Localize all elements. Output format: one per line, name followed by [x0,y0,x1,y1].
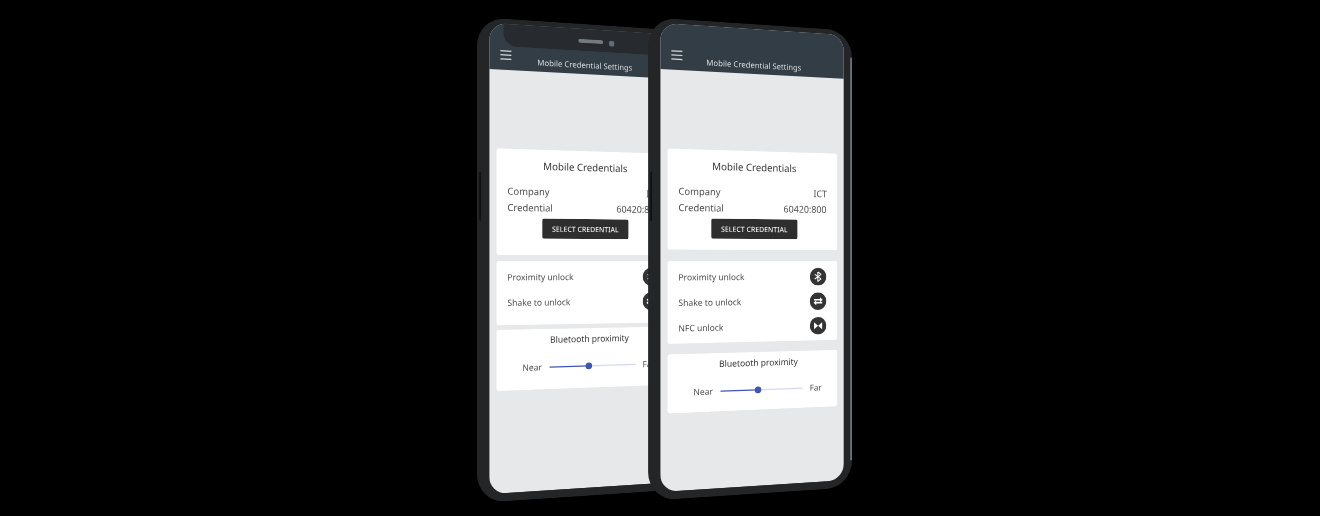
staticText: ICT [813,187,827,200]
staticText: Near [693,385,713,398]
staticText: Near [522,361,542,374]
staticText: Proximity unlock [507,271,574,283]
button[interactable]: Proximity unlock [507,264,659,290]
staticText: Far [810,382,822,394]
staticText: SELECT CREDENTIAL [552,224,619,234]
staticText: Bluetooth proximity [719,356,798,370]
button[interactable]: Shake to unlock [507,288,659,315]
staticText: Mobile Credential Settings [706,56,801,73]
button[interactable]: NFC unlock [678,313,826,341]
staticText: NFC unlock [678,321,724,335]
staticText: Company [678,184,721,198]
staticText: ICT [646,187,660,200]
button[interactable]: Open navigation menu [495,44,515,65]
staticText: Mobile Credential Settings [537,56,632,73]
button[interactable]: Proximity slider [721,383,802,396]
button[interactable]: Proximity unlock [678,264,826,290]
staticText: Credential [678,201,724,215]
staticText: SELECT CREDENTIAL [721,224,788,234]
staticText: 60420:800 [783,202,827,216]
staticText: Shake to unlock [678,296,741,309]
button[interactable]: SELECT CREDENTIAL [542,218,629,239]
staticText: Shake to unlock [507,296,570,309]
staticText: 60420:800 [616,202,660,216]
button[interactable]: Proximity slider [550,359,635,372]
staticText: Mobile Credentials [712,159,797,175]
staticText: Credential [507,201,553,215]
button[interactable]: Open navigation menu [666,44,686,65]
button[interactable]: Shake to unlock [678,288,826,315]
staticText: Bluetooth proximity [550,332,629,346]
staticText: Mobile Credentials [543,159,628,175]
staticText: Proximity unlock [678,271,745,283]
button[interactable]: SELECT CREDENTIAL [711,218,798,239]
staticText: Company [507,184,550,198]
staticText: Far [643,358,655,370]
